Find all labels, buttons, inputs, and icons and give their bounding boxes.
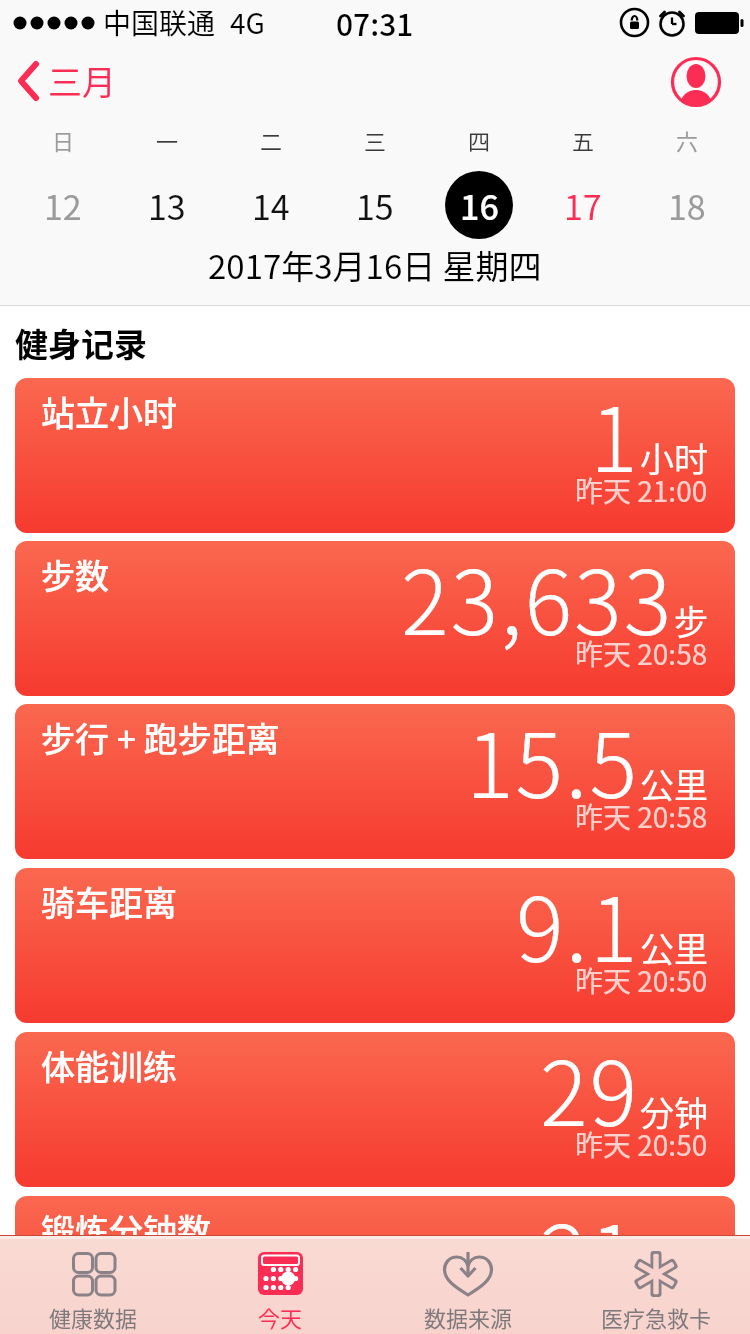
staticText: 16 [460, 181, 499, 230]
staticText: 健康数据 [49, 1301, 138, 1333]
button[interactable]: 体能训练 [15, 1032, 735, 1187]
staticText: 昨天 20:58 [575, 633, 708, 674]
staticText: 三 [364, 124, 387, 156]
staticText: 步行 + 跑步距离 [41, 713, 280, 762]
button[interactable]: 16 [445, 171, 513, 239]
button[interactable]: 骑车距离 [15, 868, 735, 1023]
staticText: 小时 [640, 433, 708, 482]
staticText: 锻炼分钟数 [41, 1205, 211, 1254]
button[interactable]: 步行 + 跑步距离 [15, 704, 735, 859]
staticText: 29 [540, 1032, 640, 1152]
button[interactable]: 步数 [15, 541, 735, 696]
button[interactable]: 今天 [187, 1239, 374, 1334]
button[interactable]: 12 [44, 181, 82, 230]
staticText: 站立小时 [41, 387, 177, 436]
button[interactable]: 15 [356, 181, 394, 230]
staticText: 1 [590, 378, 640, 498]
staticText: 六 [676, 124, 699, 156]
button[interactable]: 17 [564, 181, 602, 230]
staticText: 公里 [640, 759, 708, 808]
staticText: 二 [260, 124, 283, 156]
staticText: 中国联通 [103, 2, 216, 43]
staticText: 五 [572, 124, 595, 156]
button[interactable]: 医疗急救卡 [562, 1239, 750, 1334]
staticText: 07:31 [336, 1, 414, 44]
staticText: 四 [468, 124, 491, 156]
staticText: 日 [52, 124, 75, 156]
button[interactable]: 站立小时 [15, 378, 735, 533]
button[interactable]: 14 [252, 181, 290, 230]
staticText: 今天 [258, 1301, 303, 1333]
staticText: 23,633 [401, 541, 674, 661]
staticText: 9.1 [516, 868, 640, 988]
staticText: 三月 [48, 56, 116, 105]
staticText: 分钟 [640, 1087, 708, 1136]
button[interactable]: 数据来源 [374, 1239, 562, 1334]
button[interactable] [671, 57, 721, 107]
button[interactable]: 锻炼分钟数 [15, 1196, 735, 1334]
staticText: 昨天 20:50 [575, 960, 708, 1001]
staticText: 公里 [640, 923, 708, 972]
staticText: 分钟 [640, 1251, 708, 1300]
staticText: 医疗急救卡 [601, 1301, 712, 1333]
button[interactable]: 18 [668, 181, 706, 230]
staticText: 体能训练 [41, 1041, 177, 1090]
staticText: 骑车距离 [41, 877, 177, 926]
staticText: 21 [540, 1196, 640, 1316]
staticText: 昨天 20:58 [575, 796, 708, 837]
staticText: 数据来源 [424, 1301, 513, 1333]
staticText: 一 [156, 124, 179, 156]
staticText: 15.5 [466, 704, 640, 824]
staticText: 2017年3月16日 星期四 [208, 241, 542, 289]
staticText: 步数 [41, 550, 109, 599]
staticText: 昨天 20:50 [575, 1124, 708, 1165]
staticText: 昨天 21:00 [575, 470, 708, 511]
button[interactable]: 健康数据 [0, 1239, 187, 1334]
button[interactable]: 三月 [16, 56, 116, 105]
staticText: 健身记录 [15, 319, 147, 367]
staticText: 步 [674, 596, 708, 645]
staticText: 4G [230, 2, 265, 43]
button[interactable]: 13 [148, 181, 186, 230]
